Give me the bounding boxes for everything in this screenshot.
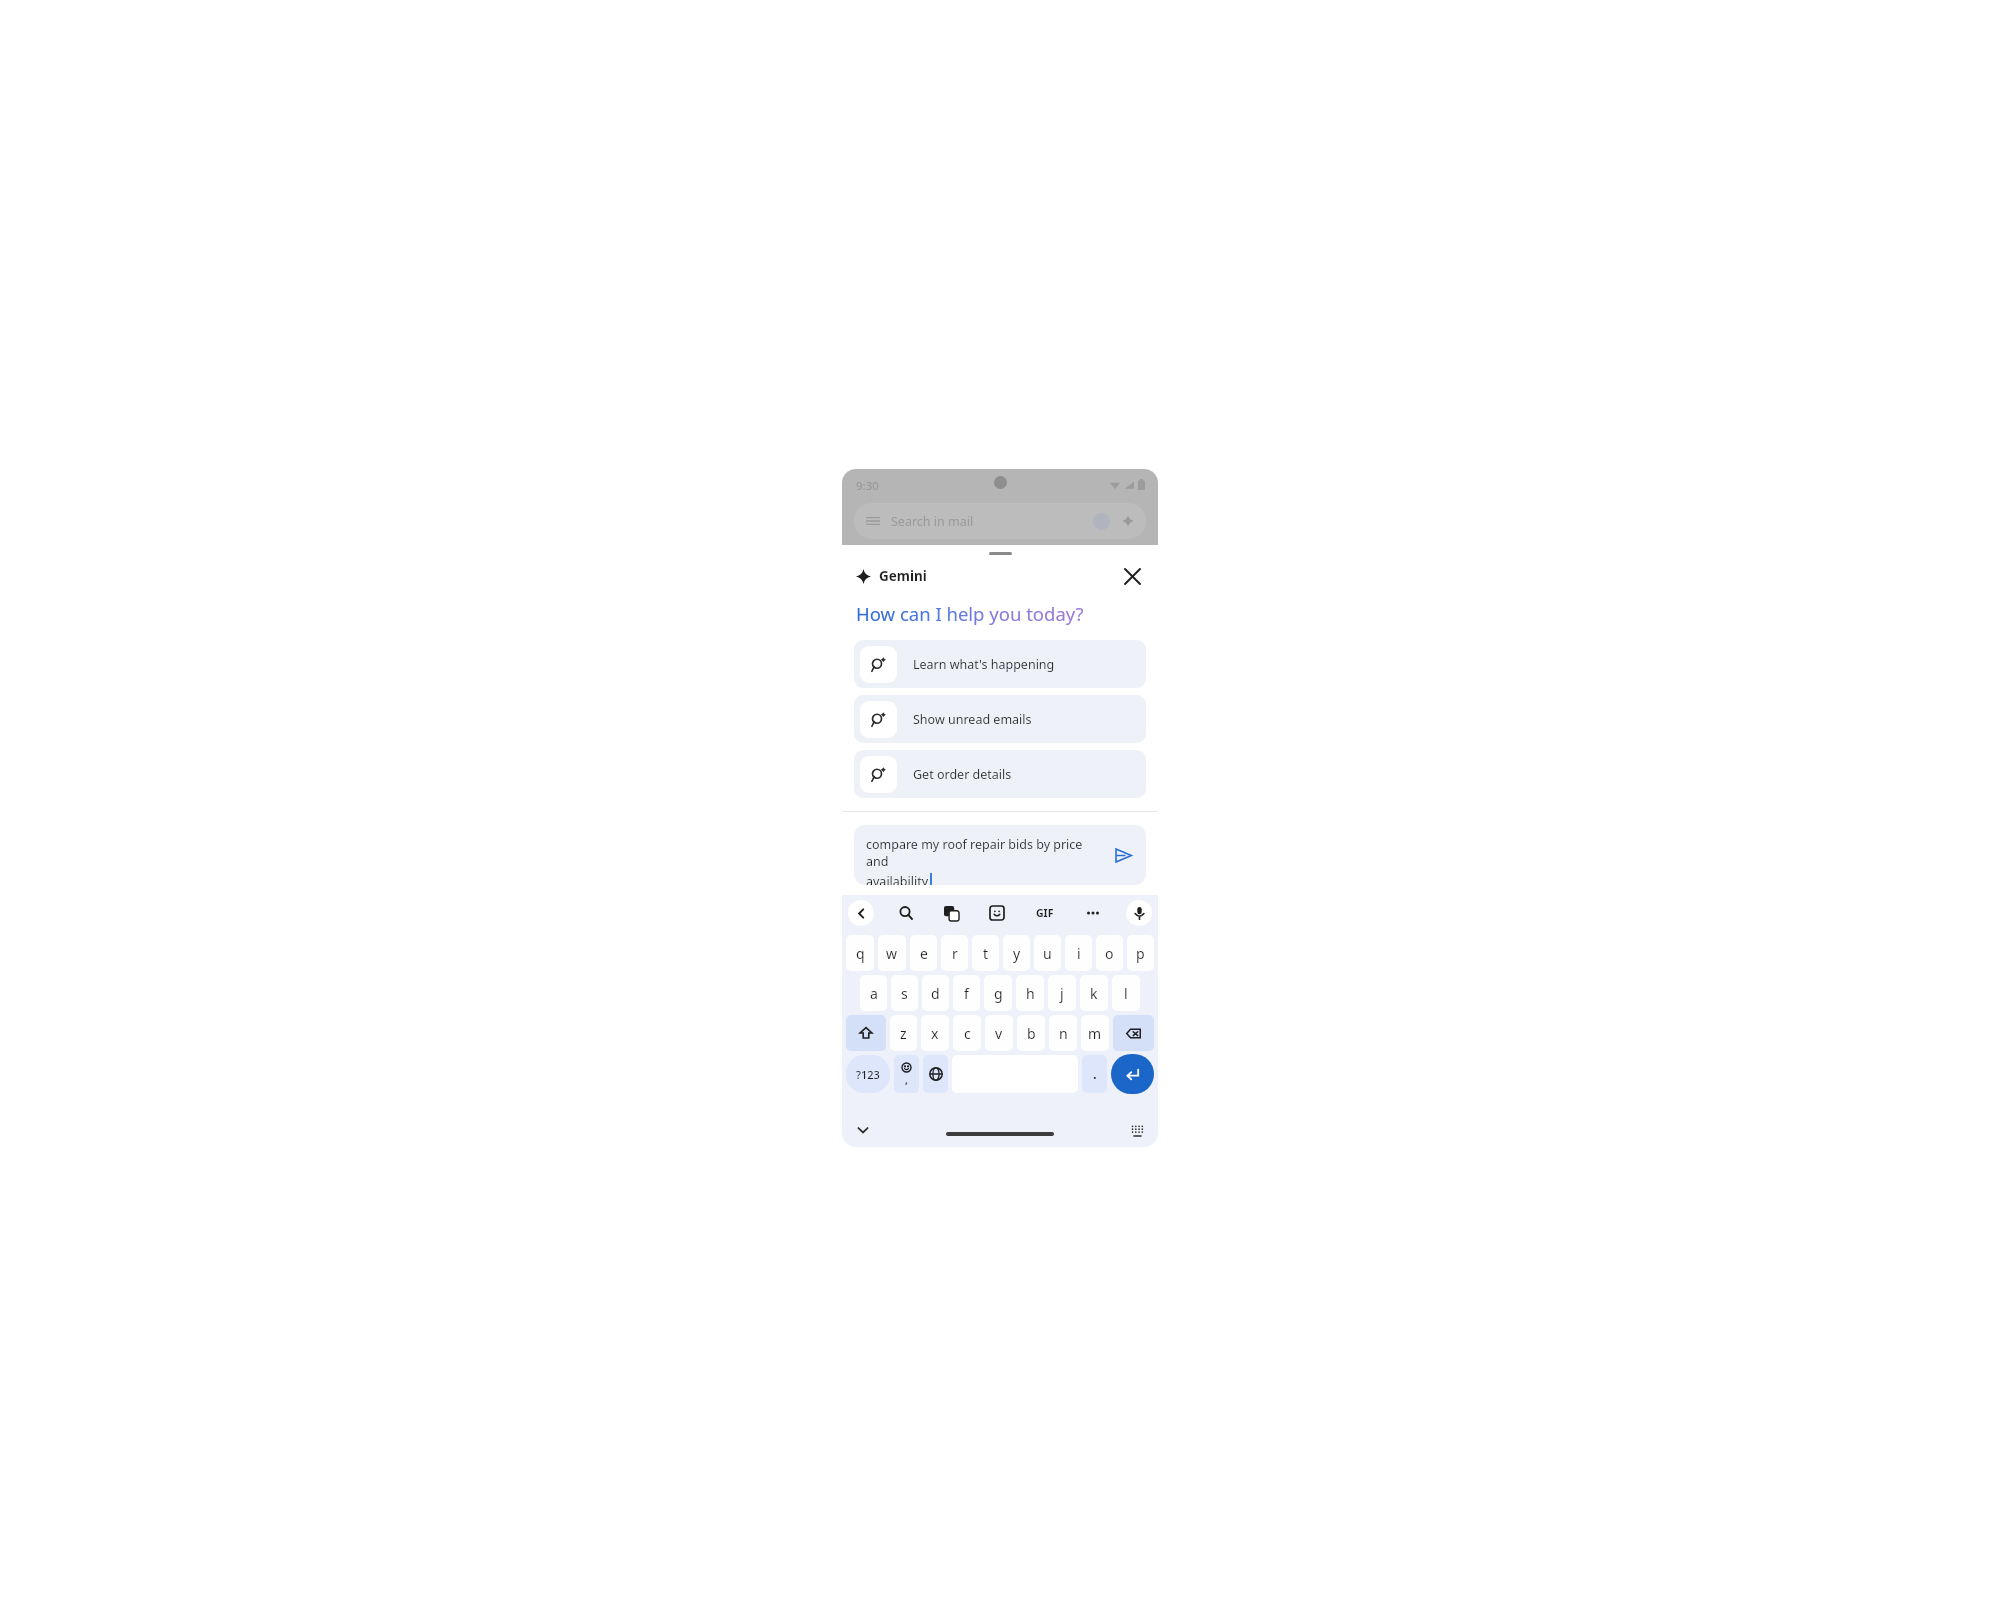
- button[interactable]: Stickers: [984, 900, 1010, 926]
- staticText: w: [886, 944, 898, 963]
- button[interactable]: Voice input: [1126, 900, 1152, 926]
- button[interactable]: Send: [1108, 840, 1138, 870]
- button[interactable]: Shift: [846, 1015, 886, 1051]
- button[interactable]: i: [1065, 935, 1092, 971]
- staticText: x: [931, 1024, 939, 1043]
- staticText: 9:30: [856, 478, 879, 494]
- button[interactable]: r: [941, 935, 968, 971]
- staticText: z: [900, 1024, 907, 1043]
- staticText: How can I help you today?: [856, 601, 1084, 626]
- button[interactable]: Switch keyboard: [1124, 1117, 1150, 1143]
- staticText: compare my roof repair bids by price and: [866, 836, 1094, 870]
- button[interactable]: g: [984, 975, 1012, 1011]
- button[interactable]: w: [878, 935, 906, 971]
- button[interactable]: e: [910, 935, 937, 971]
- button[interactable]: c: [953, 1015, 981, 1051]
- staticText: GIF: [1036, 906, 1054, 920]
- staticText: i: [1077, 944, 1081, 963]
- button[interactable]: o: [1096, 935, 1123, 971]
- button[interactable]: .: [1082, 1055, 1107, 1093]
- button[interactable]: More options: [1080, 900, 1106, 926]
- staticText: u: [1043, 944, 1052, 963]
- staticText: e: [920, 944, 928, 963]
- button[interactable]: p: [1127, 935, 1154, 971]
- staticText: p: [1136, 944, 1145, 963]
- button[interactable]: Show unread emails: [854, 695, 1146, 743]
- staticText: Search in mail: [891, 513, 974, 530]
- button[interactable]: m: [1081, 1015, 1109, 1051]
- staticText: o: [1105, 944, 1114, 963]
- staticText: c: [964, 1024, 971, 1043]
- staticText: Get order details: [913, 766, 1012, 783]
- staticText: d: [931, 984, 940, 1003]
- button[interactable]: j: [1048, 975, 1076, 1011]
- button[interactable]: GIF: [1030, 898, 1060, 928]
- button[interactable]: h: [1016, 975, 1044, 1011]
- button[interactable]: Emoji: [894, 1055, 919, 1093]
- button[interactable]: t: [972, 935, 999, 971]
- button[interactable]: d: [922, 975, 949, 1011]
- button[interactable]: ?123: [846, 1055, 890, 1093]
- button[interactable]: u: [1034, 935, 1061, 971]
- staticText: m: [1088, 1024, 1102, 1043]
- button[interactable]: k: [1080, 975, 1108, 1011]
- staticText: v: [995, 1024, 1003, 1043]
- staticText: s: [901, 984, 908, 1003]
- staticText: l: [1124, 984, 1128, 1003]
- button[interactable]: Change language: [923, 1055, 948, 1093]
- button[interactable]: n: [1049, 1015, 1077, 1051]
- button[interactable]: a: [860, 975, 887, 1011]
- button[interactable]: y: [1003, 935, 1030, 971]
- button[interactable]: s: [891, 975, 918, 1011]
- staticText: g: [994, 984, 1003, 1003]
- staticText: f: [964, 984, 969, 1003]
- staticText: y: [1013, 944, 1021, 963]
- staticText: j: [1060, 984, 1064, 1003]
- button[interactable]: b: [1017, 1015, 1045, 1051]
- button[interactable]: Translate: [938, 900, 964, 926]
- button[interactable]: Back: [848, 900, 874, 926]
- button[interactable]: f: [953, 975, 980, 1011]
- staticText: ?123: [856, 1067, 880, 1082]
- button[interactable]: Close: [1116, 561, 1148, 591]
- button[interactable]: z: [890, 1015, 917, 1051]
- staticText: availability: [866, 873, 929, 885]
- button[interactable]: compare my roof repair bids by price and: [854, 825, 1146, 885]
- button[interactable]: Backspace: [1113, 1015, 1154, 1051]
- staticText: q: [856, 944, 865, 963]
- staticText: Show unread emails: [913, 711, 1032, 728]
- button[interactable]: Search: [893, 900, 919, 926]
- staticText: Gemini: [879, 567, 927, 585]
- button[interactable]: q: [846, 935, 874, 971]
- button[interactable]: v: [985, 1015, 1013, 1051]
- staticText: r: [952, 944, 958, 963]
- staticText: h: [1026, 984, 1035, 1003]
- button[interactable]: Learn what's happening: [854, 640, 1146, 688]
- button[interactable]: x: [921, 1015, 949, 1051]
- staticText: a: [870, 984, 878, 1003]
- staticText: n: [1059, 1024, 1068, 1043]
- button[interactable]: l: [1112, 975, 1140, 1011]
- staticText: b: [1027, 1024, 1036, 1043]
- button[interactable]: Enter: [1111, 1054, 1154, 1094]
- staticText: Learn what's happening: [913, 656, 1055, 673]
- button[interactable]: Get order details: [854, 750, 1146, 798]
- button[interactable]: Hide keyboard: [850, 1117, 876, 1143]
- staticText: k: [1090, 984, 1098, 1003]
- staticText: .: [1093, 1065, 1097, 1083]
- staticText: ,: [905, 1073, 908, 1087]
- staticText: t: [983, 944, 989, 963]
